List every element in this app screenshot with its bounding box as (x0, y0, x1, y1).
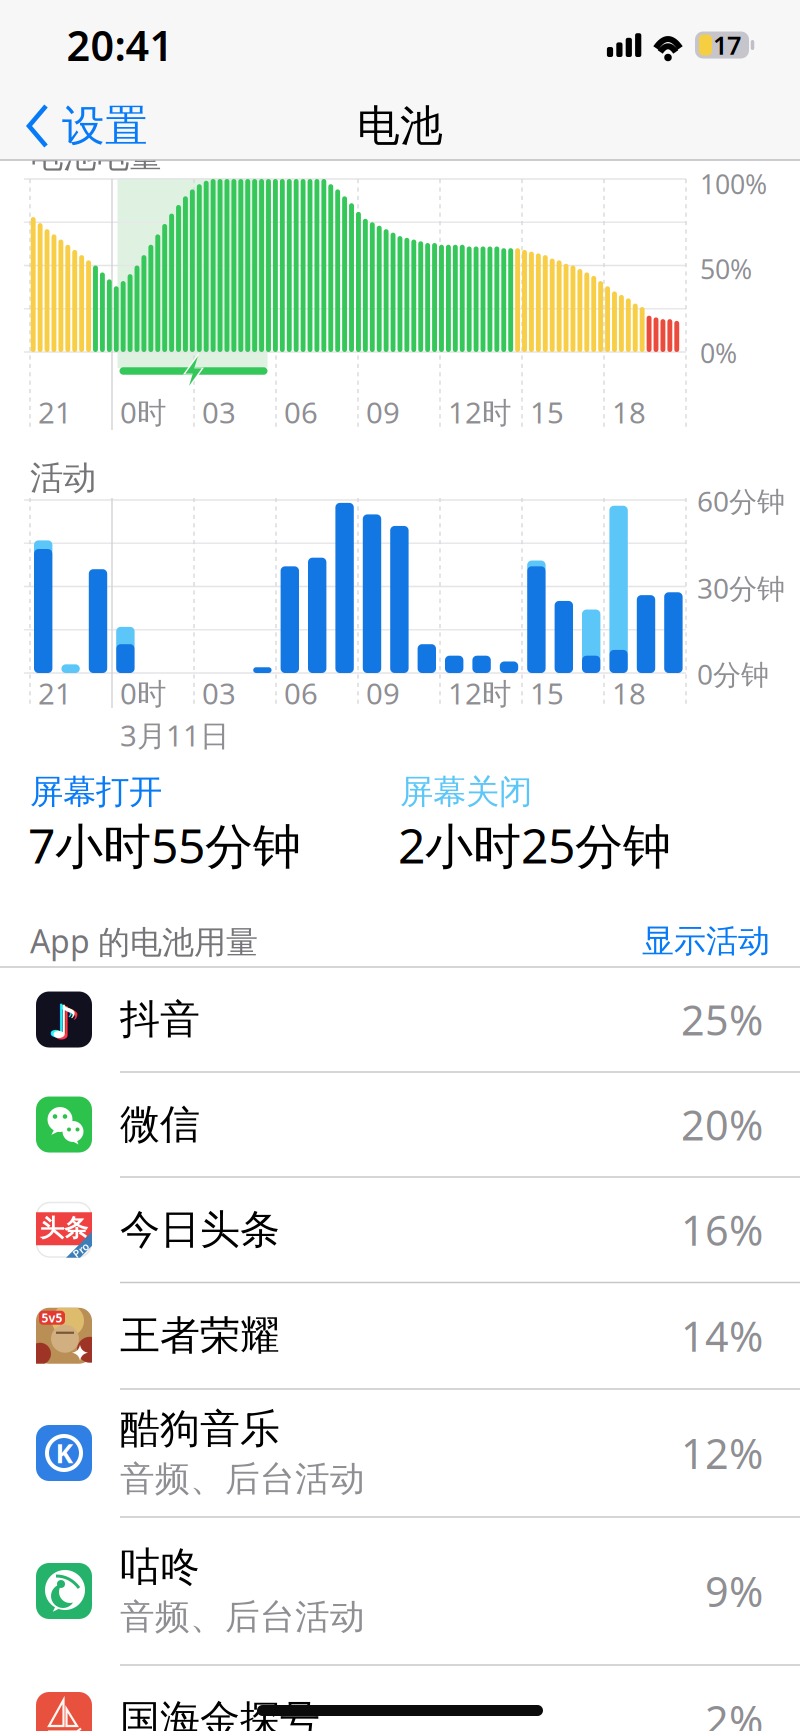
staticText: 2% (705, 1693, 763, 1731)
staticText: 5v5 (41, 1310, 62, 1326)
button[interactable]: 显示活动 (550, 914, 770, 968)
staticText: 15 (530, 673, 564, 712)
staticText: 18 (612, 392, 646, 431)
staticText: 60分钟 (697, 482, 785, 520)
staticText: 03 (202, 392, 236, 431)
staticText: 17 (713, 28, 741, 62)
staticText: 头条 (40, 1213, 88, 1243)
staticText: 09 (366, 673, 400, 712)
staticText: 王者荣耀 (120, 1311, 280, 1360)
staticText: 18 (612, 673, 646, 712)
button[interactable]: 微信 (0, 1072, 800, 1177)
button[interactable]: 国海金探号 (0, 1665, 800, 1731)
staticText: 100% (700, 166, 767, 202)
staticText: 屏幕打开 (30, 771, 162, 812)
staticText: 20% (681, 1097, 763, 1152)
staticText: 06 (284, 392, 318, 431)
staticText: 12时 (448, 392, 511, 431)
staticText: 21 (38, 673, 72, 712)
staticText: 抖音 (120, 995, 200, 1044)
staticText: 微信 (120, 1100, 200, 1149)
staticText: Pro (72, 1243, 90, 1257)
staticText: 09 (366, 392, 400, 431)
staticText: 今日头条 (120, 1205, 280, 1254)
staticText: 国海金探号 (120, 1695, 320, 1731)
staticText: 活动 (30, 457, 96, 498)
staticText: 7小时55分钟 (28, 813, 301, 877)
staticText: 25% (681, 992, 763, 1047)
staticText: 屏幕关闭 (400, 771, 532, 812)
button[interactable]: 返回设置 (27, 95, 157, 157)
button[interactable]: 抖音 (0, 967, 800, 1072)
staticText: 03 (202, 673, 236, 712)
staticText: 音频、后台活动 (120, 1458, 365, 1500)
staticText: 3月11日 (120, 715, 229, 754)
staticText: 20:41 (66, 18, 173, 72)
staticText: 电池 (357, 100, 443, 152)
staticText: 0% (700, 335, 737, 371)
button[interactable]: 今日头条 (0, 1177, 800, 1282)
staticText: 电池电量 (30, 135, 162, 176)
button[interactable]: 王者荣耀 (0, 1282, 800, 1389)
staticText: 音频、后台活动 (120, 1596, 365, 1638)
staticText: 12% (681, 1426, 763, 1480)
staticText: 设置 (62, 100, 148, 152)
button[interactable]: 咕咚 (0, 1517, 800, 1665)
staticText: 12时 (448, 673, 511, 712)
staticText: 酷狗音乐 (120, 1404, 280, 1453)
staticText: 15 (530, 392, 564, 431)
staticText: 50% (700, 251, 752, 287)
staticText: 21 (38, 392, 72, 431)
staticText: ♪ (52, 998, 81, 1049)
staticText: App 的电池用量 (30, 920, 258, 962)
staticText: 0时 (120, 392, 166, 431)
staticText: 2小时25分钟 (398, 813, 671, 877)
staticText: 0分钟 (697, 655, 769, 693)
staticText: 16% (681, 1202, 763, 1257)
staticText: 30分钟 (697, 569, 785, 607)
staticText: 显示活动 (642, 921, 770, 961)
staticText: ♪ (47, 995, 76, 1047)
staticText: ♪ (49, 996, 78, 1048)
staticText: 06 (284, 673, 318, 712)
staticText: 0时 (120, 673, 166, 712)
staticText: K (55, 1435, 73, 1471)
staticText: 9% (705, 1564, 763, 1618)
staticText: 咕咚 (120, 1542, 200, 1591)
button[interactable]: 酷狗音乐 (0, 1389, 800, 1517)
staticText: 14% (681, 1308, 763, 1363)
